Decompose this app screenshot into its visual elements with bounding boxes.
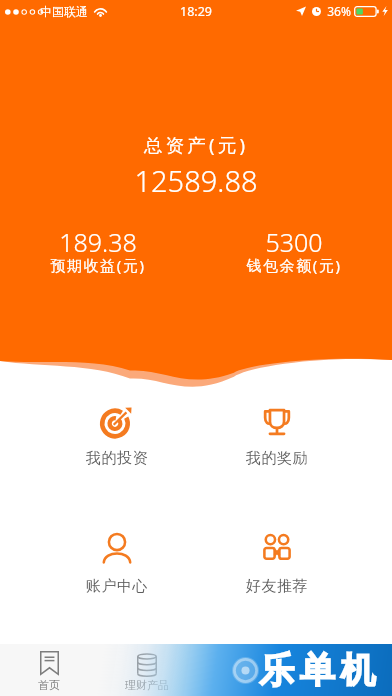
staticText: 好友推荐 — [231, 577, 323, 596]
staticText: 我的奖励 — [231, 449, 323, 468]
button[interactable]: 首页 — [0, 644, 98, 692]
button[interactable]: 发现 — [196, 644, 294, 692]
staticText: 预期收益(元) — [18, 255, 178, 275]
staticText: 首页 — [38, 678, 60, 692]
button[interactable]: 理财产品 — [98, 644, 196, 692]
button[interactable]: 我的奖励 — [231, 395, 323, 471]
staticText: 乐单机 — [259, 648, 381, 692]
staticText: 钱包余额(元) — [214, 255, 374, 275]
staticText: 5300 — [214, 225, 374, 259]
staticText: 189.38 — [18, 225, 178, 259]
staticText: 总资产(元) — [0, 132, 392, 157]
staticText: 18:29 — [180, 3, 212, 20]
staticText: 账户中心 — [71, 577, 163, 596]
staticText: 中国联通 — [40, 4, 88, 19]
staticText: 理财产品 — [125, 678, 169, 692]
button[interactable]: 我的投资 — [71, 395, 163, 471]
button[interactable]: 我的 — [294, 644, 392, 692]
staticText: 12589.88 — [0, 161, 392, 200]
button[interactable]: 账户中心 — [71, 522, 163, 599]
button[interactable]: 好友推荐 — [231, 522, 323, 599]
staticText: 36% — [327, 3, 351, 19]
staticText: 发现 — [234, 678, 256, 692]
staticText: 我的 — [332, 678, 354, 692]
staticText: 我的投资 — [71, 449, 163, 468]
